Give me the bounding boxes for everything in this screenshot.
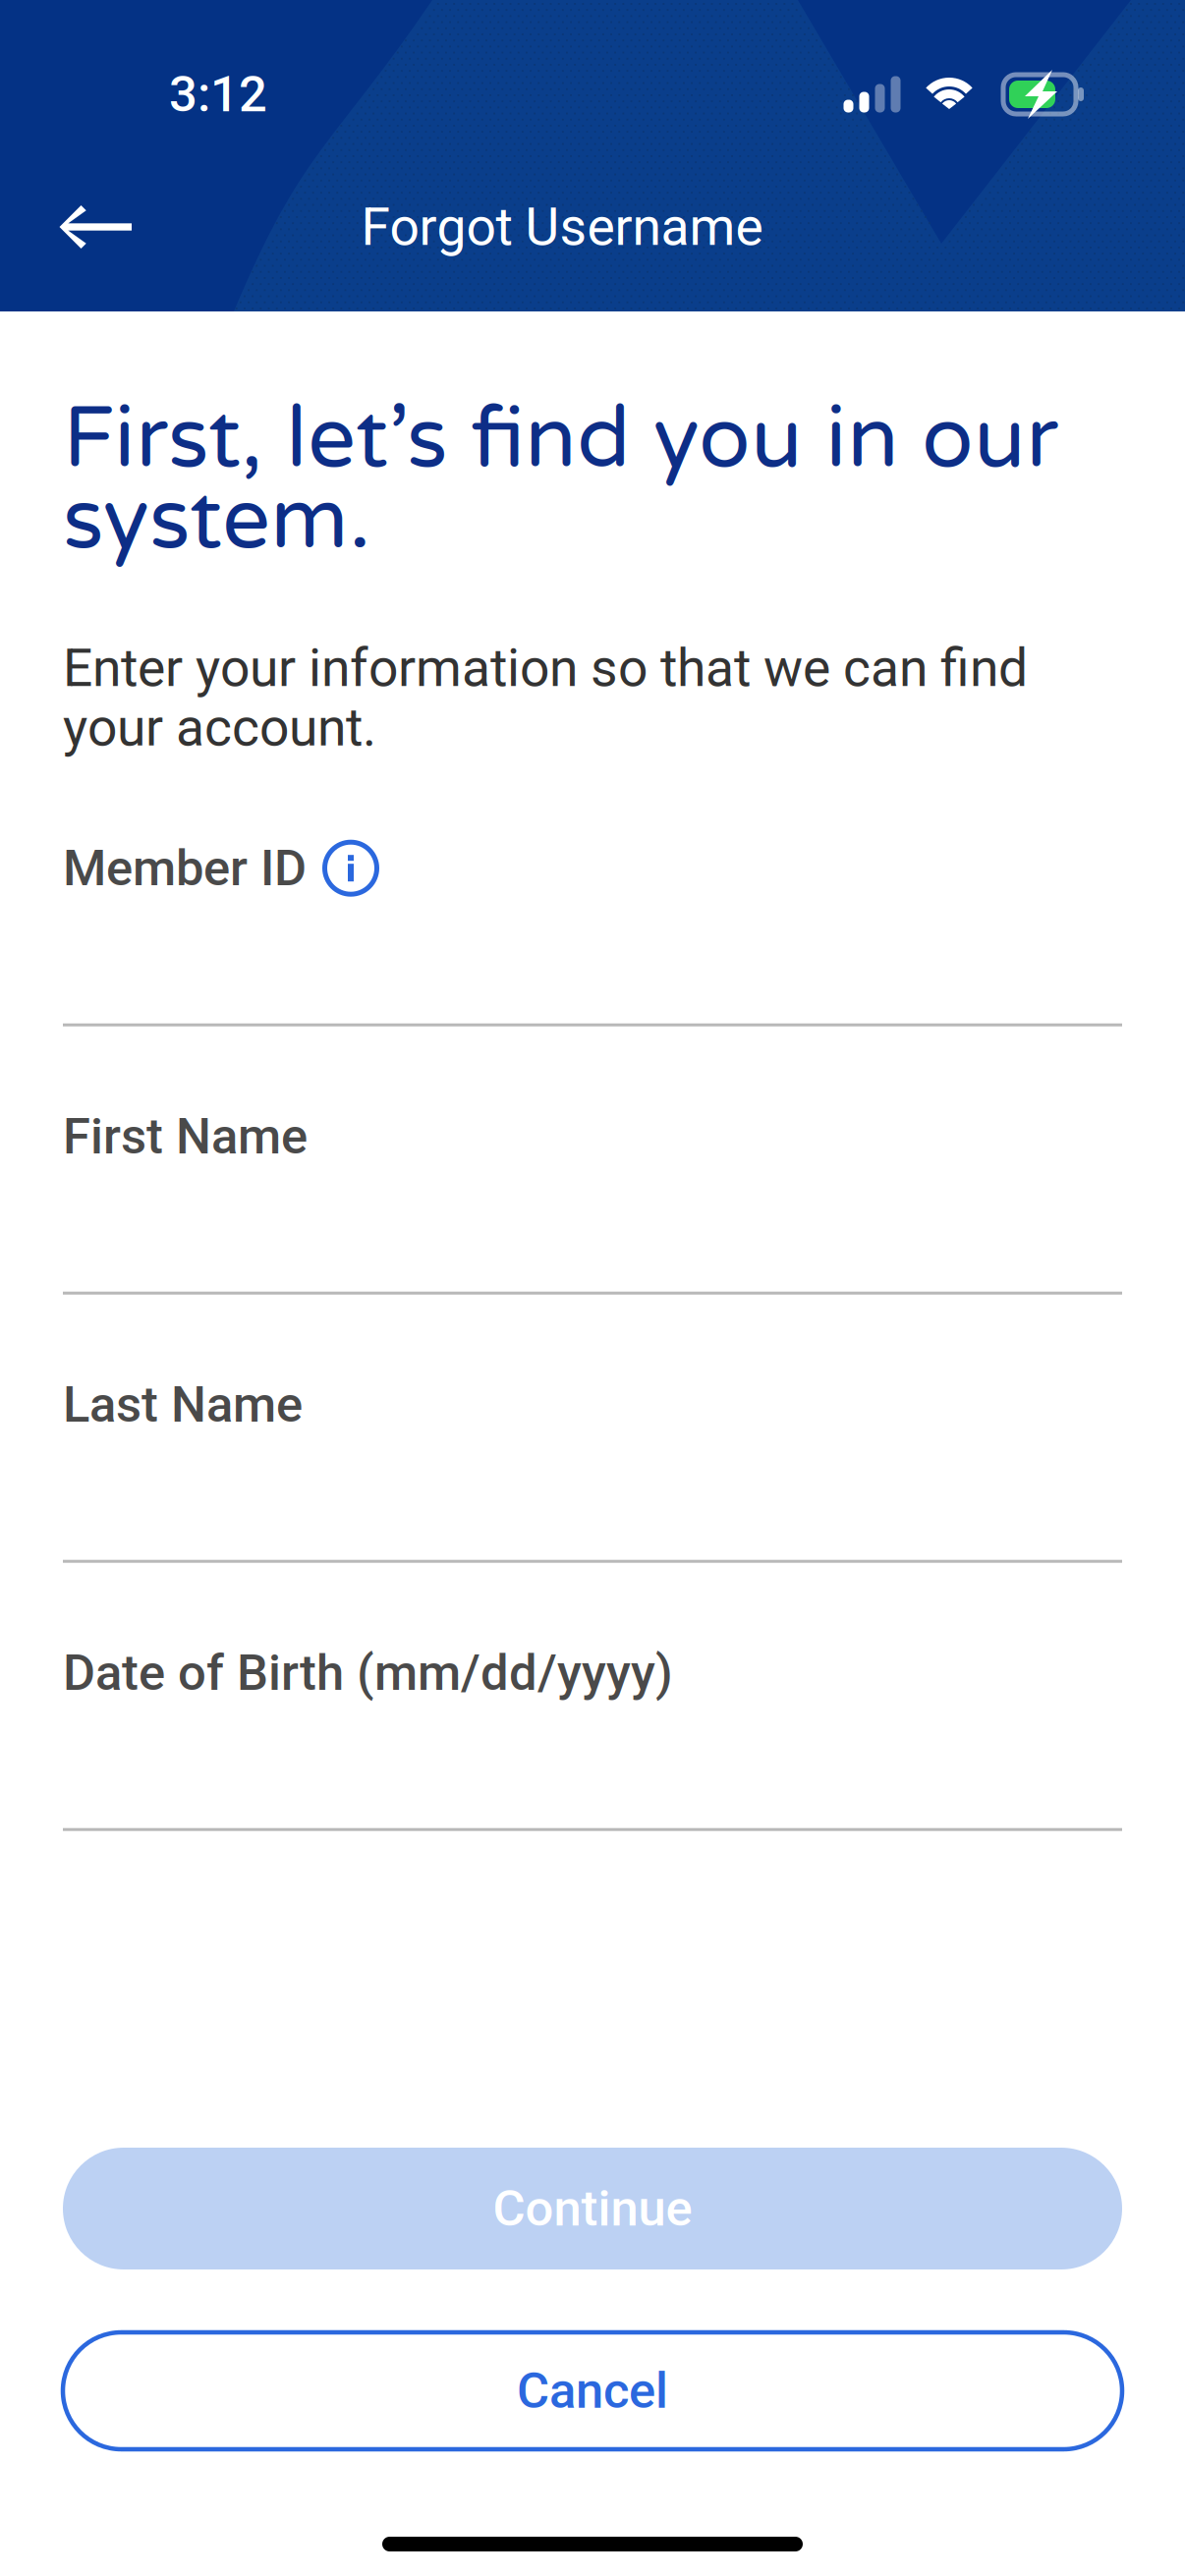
button[interactable]: Continue xyxy=(63,2148,1122,2269)
staticText: Last Name xyxy=(63,1375,303,1434)
button[interactable]: Member ID xyxy=(63,758,1122,1026)
staticText: Continue xyxy=(493,2179,692,2238)
button[interactable]: Last Name xyxy=(63,1295,1122,1563)
staticText: Date of Birth (mm/dd/yyyy) xyxy=(63,1644,673,1702)
staticText: Member ID xyxy=(63,839,307,897)
staticText: First, let’s find you in our system. xyxy=(63,388,1058,571)
staticText: Forgot Username xyxy=(361,196,763,258)
button[interactable]: Date of Birth (mm/dd/yyyy) xyxy=(63,1563,1122,1831)
staticText: Cancel xyxy=(517,2362,668,2420)
button[interactable]: First Name xyxy=(63,1026,1122,1295)
button[interactable]: Cancel xyxy=(63,2332,1122,2449)
button[interactable]: Back xyxy=(0,181,159,273)
staticText: First Name xyxy=(63,1107,308,1166)
staticText: 3:12 xyxy=(169,65,267,123)
staticText: Enter your information so that we can fi… xyxy=(63,637,1028,758)
